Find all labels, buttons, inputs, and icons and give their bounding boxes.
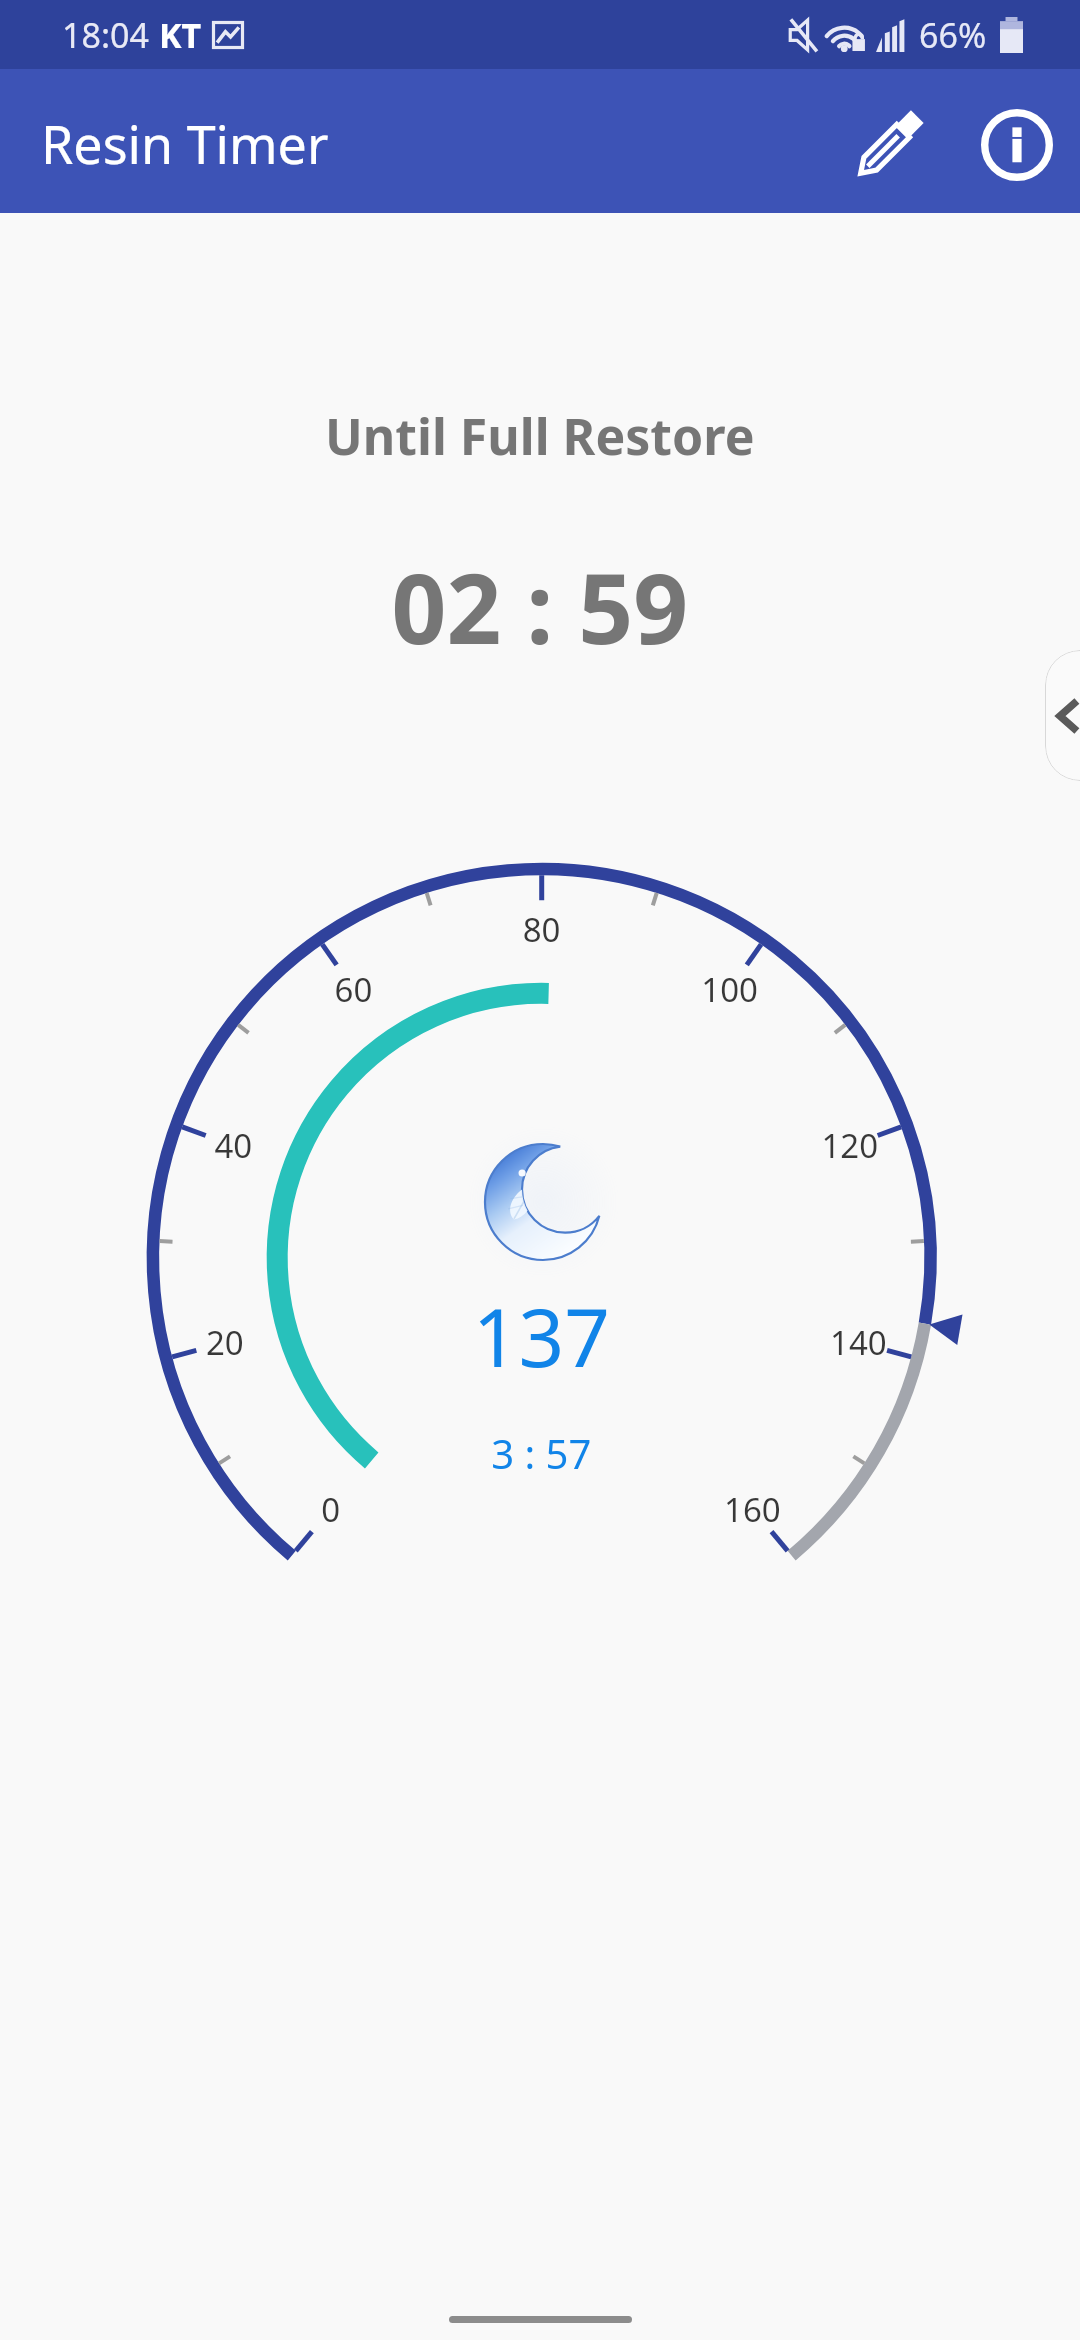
staticText: 66% <box>919 12 987 58</box>
button[interactable]: Edit <box>825 81 953 209</box>
staticText: Resin Timer <box>41 108 329 179</box>
staticText: 18:04 <box>62 12 149 58</box>
staticText: KT <box>159 12 202 58</box>
button[interactable]: Info <box>953 81 1080 209</box>
button[interactable]: Open side panel <box>1045 650 1080 781</box>
